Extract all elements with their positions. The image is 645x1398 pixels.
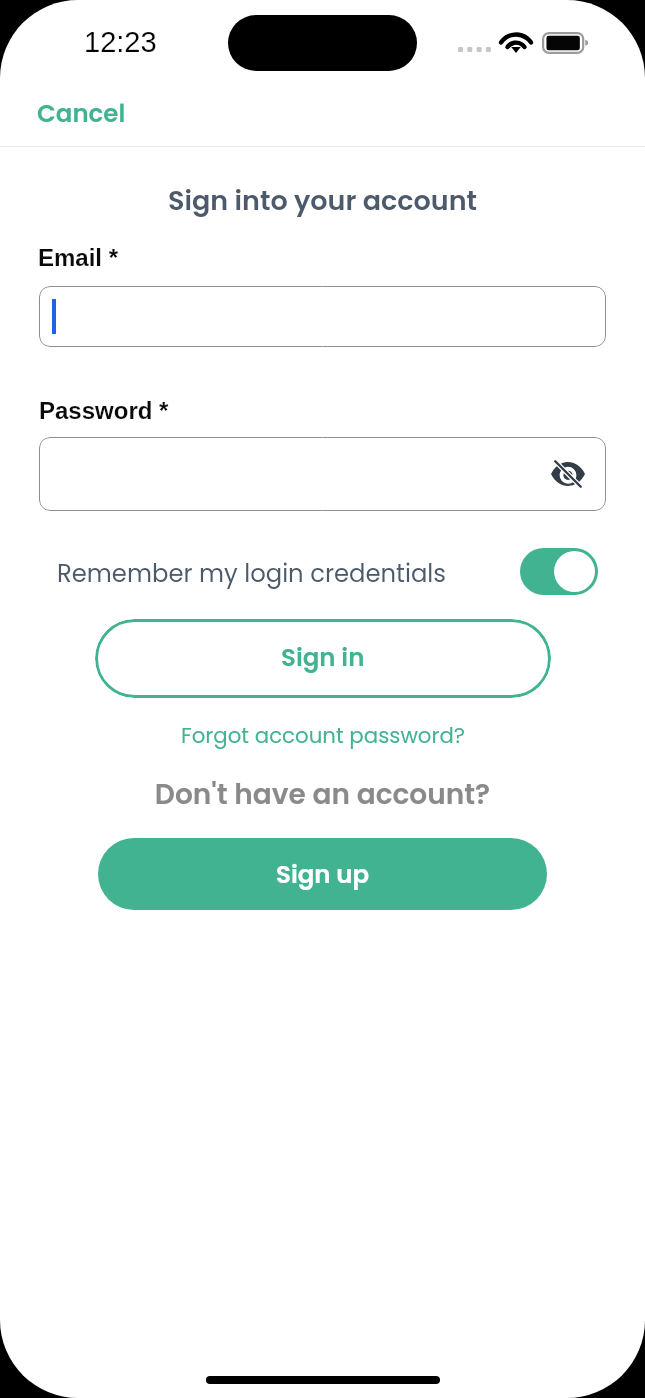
staticText: Sign up [276, 857, 370, 891]
staticText: Email * [38, 244, 119, 271]
staticText: Forgot account password? [181, 721, 465, 751]
staticText: Cancel [37, 96, 126, 130]
button[interactable]: Sign in [95, 619, 551, 698]
staticText: 12:23 [84, 26, 157, 58]
button[interactable]: Remember my login credentials [520, 548, 598, 595]
staticText: Sign in [281, 640, 365, 674]
button[interactable]: Show password [548, 454, 588, 494]
staticText: Sign into your account [0, 182, 645, 220]
button[interactable]: Cancel [37, 96, 126, 130]
staticText: Don't have an account? [0, 775, 645, 814]
staticText: Remember my login credentials [57, 556, 446, 590]
staticText: Password * [39, 397, 169, 424]
button[interactable]: Forgot account password? [0, 718, 645, 754]
button[interactable] [39, 286, 606, 347]
button[interactable]: Sign up [98, 838, 547, 910]
